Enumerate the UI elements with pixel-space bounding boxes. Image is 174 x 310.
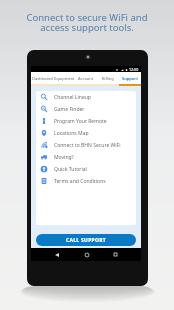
staticText: Quick Tutorial bbox=[54, 166, 87, 173]
staticText: Locations Map bbox=[54, 130, 89, 137]
button[interactable]: Locations Map bbox=[36, 127, 136, 139]
button[interactable]: Program Your Remote bbox=[36, 115, 136, 127]
staticText: CALL SUPPORT bbox=[66, 237, 107, 244]
button[interactable]: Channel Lineup bbox=[36, 91, 136, 103]
button[interactable]: Connect to BHN Secure WiFi bbox=[36, 139, 136, 151]
button[interactable]: Terms and Conditions bbox=[36, 175, 136, 187]
button[interactable]: CALL SUPPORT bbox=[36, 234, 136, 246]
button[interactable]: Home bbox=[82, 250, 91, 259]
staticText: Terms and Conditions bbox=[54, 178, 106, 185]
staticText: Equipment bbox=[54, 76, 75, 81]
button[interactable]: Recents bbox=[111, 250, 120, 259]
button[interactable]: Moving? bbox=[36, 151, 136, 163]
staticText: Program Your Remote bbox=[54, 118, 107, 125]
staticText: Dashboard bbox=[32, 76, 53, 81]
button[interactable]: Account bbox=[75, 72, 97, 84]
button[interactable]: Support bbox=[119, 72, 141, 84]
button[interactable]: Game Finder bbox=[36, 103, 136, 115]
button[interactable]: Quick Tutorial bbox=[36, 163, 136, 175]
staticText: Connect to secure WiFi and access suppor… bbox=[26, 11, 148, 34]
staticText: Account bbox=[78, 76, 94, 81]
staticText: 12:00 bbox=[129, 67, 139, 72]
button[interactable]: Equipment bbox=[53, 72, 75, 84]
button[interactable]: Billing bbox=[97, 72, 119, 84]
staticText: Support bbox=[122, 76, 138, 81]
button[interactable]: Back bbox=[52, 250, 61, 259]
staticText: Channel Lineup bbox=[54, 94, 91, 101]
staticText: Moving? bbox=[54, 154, 74, 161]
staticText: Game Finder bbox=[54, 106, 85, 113]
staticText: Billing bbox=[102, 76, 114, 81]
staticText: Connect to BHN Secure WiFi bbox=[54, 142, 121, 149]
button[interactable]: Dashboard bbox=[31, 72, 53, 84]
